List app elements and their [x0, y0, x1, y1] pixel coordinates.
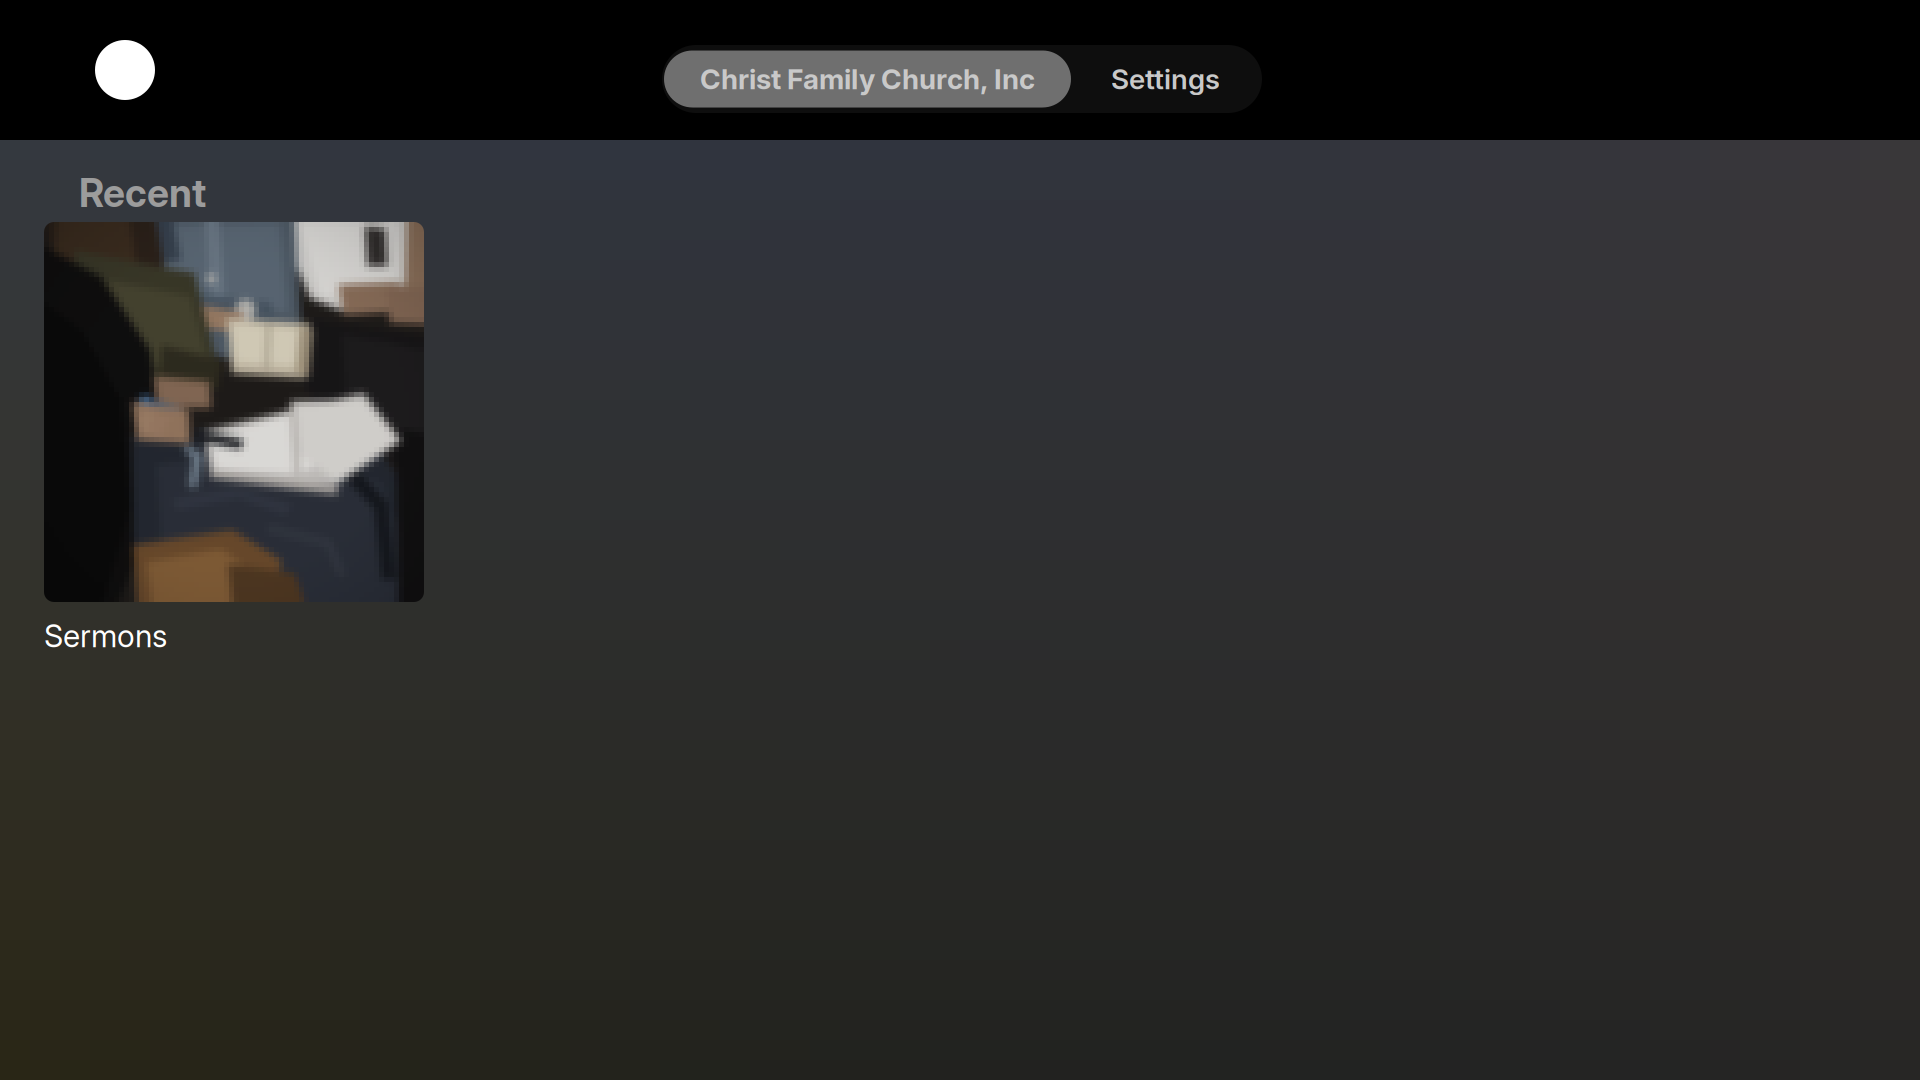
staticText: Sermons [44, 618, 167, 654]
button[interactable]: Sermons [44, 222, 424, 602]
staticText: Recent [79, 170, 206, 216]
button[interactable]: Settings [1071, 50, 1260, 107]
staticText: Christ Family Church, Inc [700, 62, 1035, 95]
button[interactable]: Christ Family Church, Inc [664, 50, 1071, 107]
staticText: Settings [1111, 62, 1220, 95]
button[interactable]: Christ Family Church, Inc [95, 40, 155, 100]
